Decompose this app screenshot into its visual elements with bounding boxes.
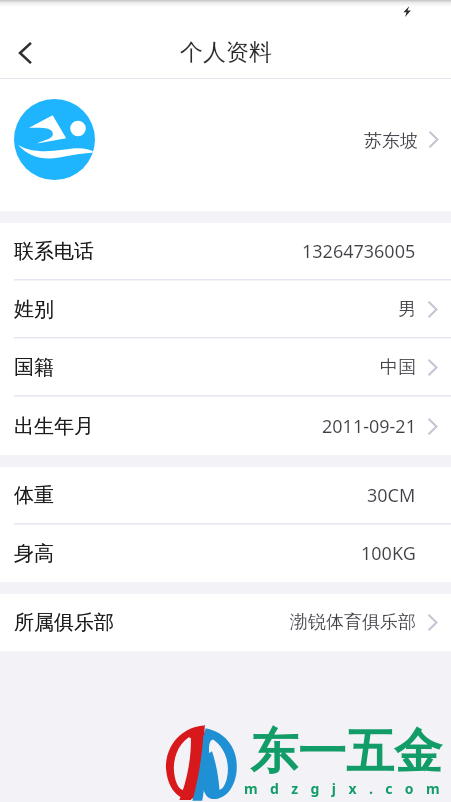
button[interactable]: 身高	[0, 525, 451, 582]
button[interactable]: 苏东坡	[0, 79, 451, 211]
button[interactable]: 姓别	[0, 281, 451, 339]
button[interactable]: 联系电话	[0, 223, 451, 281]
staticText: mdzgjx.com	[244, 779, 451, 798]
button[interactable]: Back	[0, 28, 50, 78]
staticText: 姓别	[14, 297, 54, 322]
staticText: 100KG	[361, 541, 416, 566]
staticText: 身高	[14, 541, 54, 566]
staticText: 渤锐体育俱乐部	[290, 611, 416, 634]
staticText: 2011-09-21	[322, 414, 416, 439]
staticText: 所属俱乐部	[14, 610, 114, 635]
staticText: 苏东坡	[364, 130, 418, 153]
staticText: 国籍	[14, 355, 54, 380]
staticText: 体重	[14, 483, 54, 508]
staticText: 出生年月	[14, 414, 94, 439]
button[interactable]: 国籍	[0, 339, 451, 397]
staticText: 所属俱乐部	[14, 610, 114, 635]
button[interactable]: 出生年月	[0, 397, 451, 455]
staticText: 中国	[380, 356, 416, 379]
staticText: 联系电话	[14, 239, 94, 264]
staticText: 男	[398, 298, 416, 321]
staticText: 姓别	[14, 297, 54, 322]
button[interactable]: 体重	[0, 467, 451, 525]
staticText: 体重	[14, 483, 54, 508]
button[interactable]: 所属俱乐部	[0, 594, 451, 651]
staticText: 13264736005	[302, 239, 416, 264]
staticText: 出生年月	[14, 414, 94, 439]
staticText: 东一五金	[250, 722, 442, 782]
staticText: 国籍	[14, 355, 54, 380]
staticText: 30CM	[367, 483, 416, 508]
staticText: 身高	[14, 541, 54, 566]
staticText: 个人资料	[180, 38, 272, 67]
staticText: 联系电话	[14, 239, 94, 264]
